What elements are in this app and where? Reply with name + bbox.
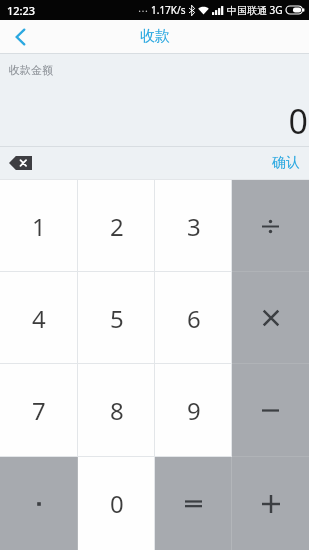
staticText: 0 xyxy=(288,98,308,144)
button[interactable]: 6 xyxy=(155,272,232,364)
staticText: 2 xyxy=(110,210,124,243)
button[interactable]: Decimal point xyxy=(0,457,78,550)
button[interactable]: 确认 xyxy=(263,147,309,179)
button[interactable]: 1 xyxy=(0,180,78,272)
staticText: 5 xyxy=(110,302,124,335)
button[interactable]: Equals xyxy=(155,457,232,550)
button[interactable]: 8 xyxy=(78,364,155,457)
staticText: 4 xyxy=(32,302,46,335)
button[interactable]: Back xyxy=(0,20,40,53)
button[interactable]: Divide xyxy=(232,180,309,272)
staticText: 8 xyxy=(110,394,124,427)
staticText: 9 xyxy=(187,394,201,427)
button[interactable]: Minus xyxy=(232,364,309,457)
staticText: 6 xyxy=(187,302,201,335)
button[interactable]: 7 xyxy=(0,364,78,457)
staticText: 中国联通 3G xyxy=(227,3,283,17)
staticText: 收款 xyxy=(140,27,170,46)
button[interactable]: 3 xyxy=(155,180,232,272)
button[interactable]: Plus xyxy=(232,457,309,550)
staticText: 1 xyxy=(32,210,46,243)
staticText: 1.17K/s xyxy=(151,3,186,17)
staticText: 确认 xyxy=(272,154,300,172)
button[interactable]: Backspace xyxy=(0,147,40,179)
staticText: 收款金额 xyxy=(9,63,53,77)
button[interactable]: 2 xyxy=(78,180,155,272)
button[interactable]: 0 xyxy=(78,457,155,550)
button[interactable]: 4 xyxy=(0,272,78,364)
staticText: 0 xyxy=(110,487,124,520)
button[interactable]: 5 xyxy=(78,272,155,364)
staticText: 7 xyxy=(32,394,46,427)
staticText: 3 xyxy=(187,210,201,243)
staticText: 12:23 xyxy=(7,3,36,18)
button[interactable]: 9 xyxy=(155,364,232,457)
button[interactable]: Multiply xyxy=(232,272,309,364)
